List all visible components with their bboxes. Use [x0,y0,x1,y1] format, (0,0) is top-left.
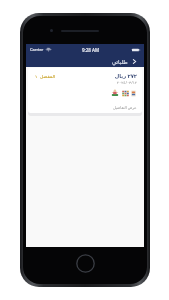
other: Forward [131,58,138,65]
button[interactable]: طلباتي [110,57,140,66]
staticText: ٣٧٣ ريال [114,72,137,79]
staticText: 9:28 AM [82,47,100,53]
staticText: ٢٠٢٤/٠٣/١٢ [116,80,137,85]
staticText: طلباتي [112,59,128,65]
staticText: ١ [35,74,38,79]
button[interactable]: Home [76,254,95,273]
staticText: Carrier [30,47,44,52]
staticText: المفضل [40,74,56,79]
staticText: عرض التفاصيل [113,105,137,110]
button[interactable]: ٣٧٣ ريال [28,68,142,113]
button[interactable]: ١ [34,74,57,79]
